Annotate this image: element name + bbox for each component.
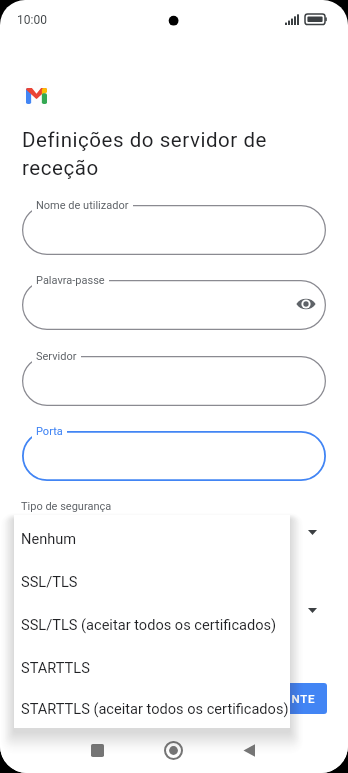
staticText: Definições do servidor de receção: [22, 128, 292, 180]
staticText: Tipo de segurança: [21, 500, 112, 513]
staticText: STARTTLS (aceitar todos os certificados): [21, 700, 289, 717]
staticText: SEGUINTE: [256, 692, 316, 705]
button[interactable]: Recentes: [81, 734, 113, 766]
button[interactable]: SSL/TLS: [14, 560, 290, 603]
staticText: Nenhum: [21, 530, 77, 547]
button[interactable]: Servidor: [22, 356, 326, 406]
button[interactable]: SSL/TLS (aceitar todos os certificados): [14, 603, 290, 646]
staticText: 10:00: [17, 13, 47, 27]
button[interactable]: Gmail: [22, 82, 50, 110]
staticText: SSL/TLS: [21, 573, 78, 590]
button[interactable]: Mostrar palavra-passe: [291, 289, 321, 319]
button[interactable]: STARTTLS (aceitar todos os certificados): [14, 689, 290, 728]
staticText: Servidor: [36, 350, 77, 363]
button[interactable]: Voltar: [232, 734, 264, 766]
button[interactable]: Início: [157, 734, 189, 766]
button[interactable]: Abrir lista: [300, 600, 324, 620]
button[interactable]: Nenhum: [14, 517, 290, 560]
staticText: Nome de utilizador: [36, 199, 129, 212]
staticText: SSL/TLS (aceitar todos os certificados): [21, 616, 277, 633]
button[interactable]: STARTTLS: [14, 646, 290, 689]
button[interactable]: SEGUINTE: [244, 683, 327, 714]
staticText: Palavra-passe: [36, 274, 105, 287]
button[interactable]: Abrir lista: [300, 522, 324, 542]
staticText: Porta: [36, 425, 63, 438]
button[interactable]: Palavra-passe: [22, 280, 326, 330]
button[interactable]: Porta: [22, 431, 326, 481]
button[interactable]: Nome de utilizador: [22, 205, 326, 255]
staticText: STARTTLS: [21, 659, 90, 676]
